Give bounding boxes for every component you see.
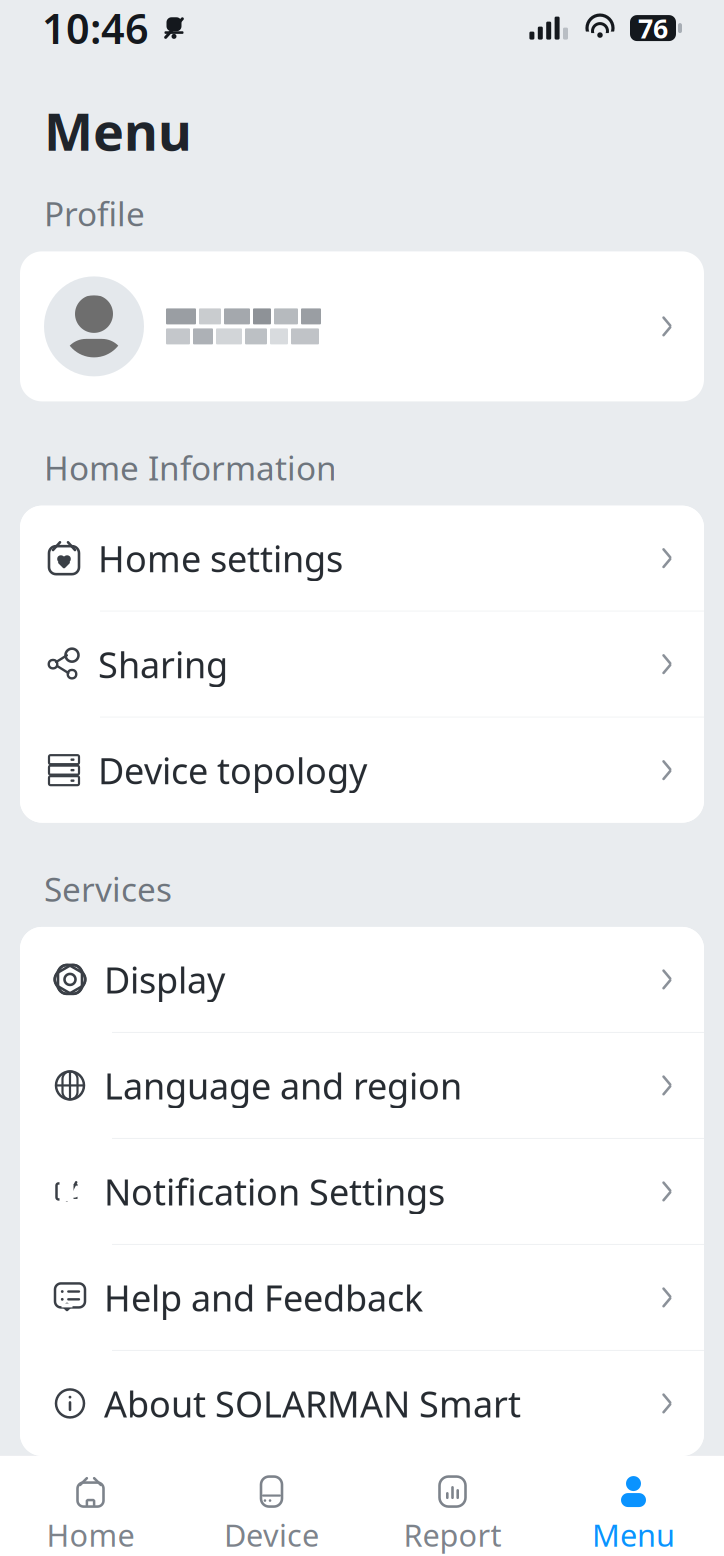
staticText: Profile	[44, 191, 145, 235]
button[interactable]: Notification Settings	[20, 1139, 704, 1244]
button[interactable]: Sharing	[20, 612, 704, 717]
staticText: Device topology	[98, 746, 367, 794]
staticText: Report	[403, 1515, 501, 1555]
button[interactable]: Display	[20, 927, 704, 1032]
staticText: Notification Settings	[104, 1167, 445, 1215]
staticText: Home settings	[98, 534, 343, 582]
button[interactable]	[20, 251, 704, 401]
button[interactable]: Device topology	[20, 718, 704, 823]
staticText: Language and region	[104, 1061, 462, 1109]
staticText: Device	[224, 1515, 319, 1555]
staticText: Menu	[592, 1515, 675, 1555]
staticText: Display	[104, 955, 225, 1003]
button[interactable]: About SOLARMAN Smart	[20, 1351, 704, 1456]
staticText: 76	[638, 10, 668, 46]
staticText: 10:46	[42, 1, 149, 55]
staticText: About SOLARMAN Smart	[104, 1379, 521, 1427]
button[interactable]: Device	[181, 1456, 362, 1556]
button[interactable]: Home settings	[20, 506, 704, 611]
staticText: Home	[46, 1515, 134, 1555]
button[interactable]: Report	[362, 1456, 543, 1556]
staticText: Help and Feedback	[104, 1273, 423, 1321]
button[interactable]: Menu	[543, 1456, 724, 1556]
button[interactable]: Language and region	[20, 1033, 704, 1138]
staticText: Home Information	[44, 445, 337, 490]
staticText: Menu	[44, 96, 192, 165]
staticText: Sharing	[98, 640, 228, 688]
button[interactable]: Help and Feedback	[20, 1245, 704, 1350]
button[interactable]: Home	[0, 1456, 181, 1556]
staticText: Services	[44, 867, 172, 911]
